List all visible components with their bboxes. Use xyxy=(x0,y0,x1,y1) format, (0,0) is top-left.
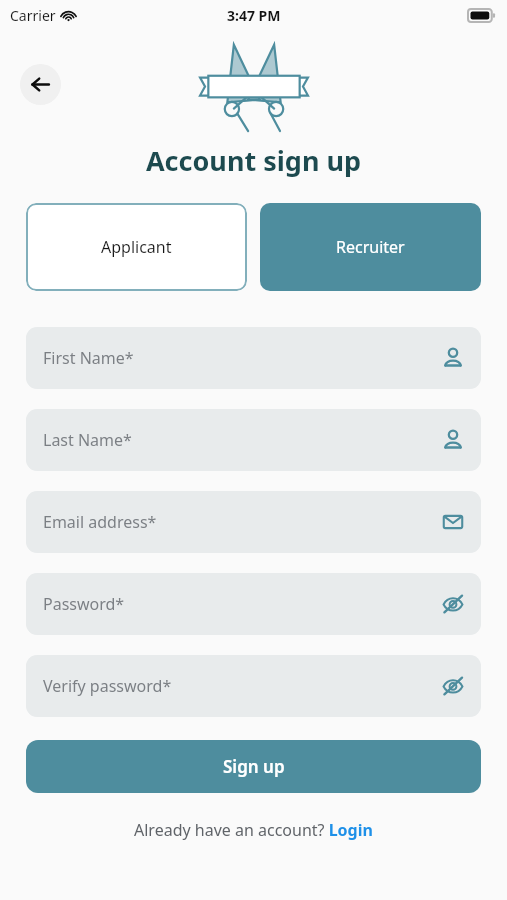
button[interactable]: First Name* xyxy=(26,327,481,389)
button[interactable]: Password* xyxy=(26,573,481,635)
button[interactable]: Sign up xyxy=(26,740,481,793)
button[interactable]: Verify password* xyxy=(26,655,481,717)
staticText: Verify password* xyxy=(43,675,442,697)
staticText: Carrier xyxy=(10,6,56,25)
staticText: Sign up xyxy=(223,755,285,778)
staticText: Last Name* xyxy=(43,429,442,451)
staticText: Email address* xyxy=(43,511,442,533)
staticText: 3:47 PM xyxy=(227,6,281,25)
staticText: First Name* xyxy=(43,347,442,369)
button[interactable]: Already have an account? Login xyxy=(0,819,507,841)
staticText: Applicant xyxy=(101,236,172,258)
staticText: Already have an account? Login xyxy=(134,819,373,841)
button[interactable]: Applicant xyxy=(26,203,247,291)
staticText: Account sign up xyxy=(0,142,507,179)
staticText: Password* xyxy=(43,593,442,615)
staticText: Recruiter xyxy=(336,236,405,258)
button[interactable]: Last Name* xyxy=(26,409,481,471)
button[interactable]: Email address* xyxy=(26,491,481,553)
button[interactable]: Recruiter xyxy=(260,203,481,291)
button[interactable]: Back xyxy=(20,64,61,105)
